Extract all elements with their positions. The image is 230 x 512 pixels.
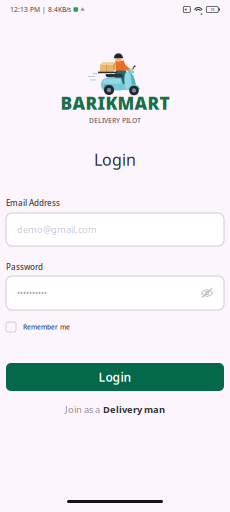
button[interactable]: Join as a xyxy=(6,404,224,415)
button[interactable]: Login xyxy=(6,363,224,391)
staticText: DELIVERY PILOT xyxy=(89,116,141,125)
staticText: Delivery man xyxy=(103,403,165,416)
staticText: Login xyxy=(98,369,131,385)
staticText: 12:13 PM | 8.4KB/s xyxy=(10,5,71,14)
staticText: Password xyxy=(6,262,43,272)
staticText: Remember me xyxy=(23,323,70,331)
staticText: Login xyxy=(94,149,136,170)
staticText: BARIKMART xyxy=(60,91,169,114)
staticText: •••••••••• xyxy=(17,288,47,298)
staticText: 74 xyxy=(210,7,214,12)
staticText: Email Address xyxy=(6,198,60,208)
staticText: demo@gmail.com xyxy=(17,223,97,236)
staticText: Join as a xyxy=(65,403,100,416)
button[interactable]: Remember me xyxy=(6,321,224,333)
